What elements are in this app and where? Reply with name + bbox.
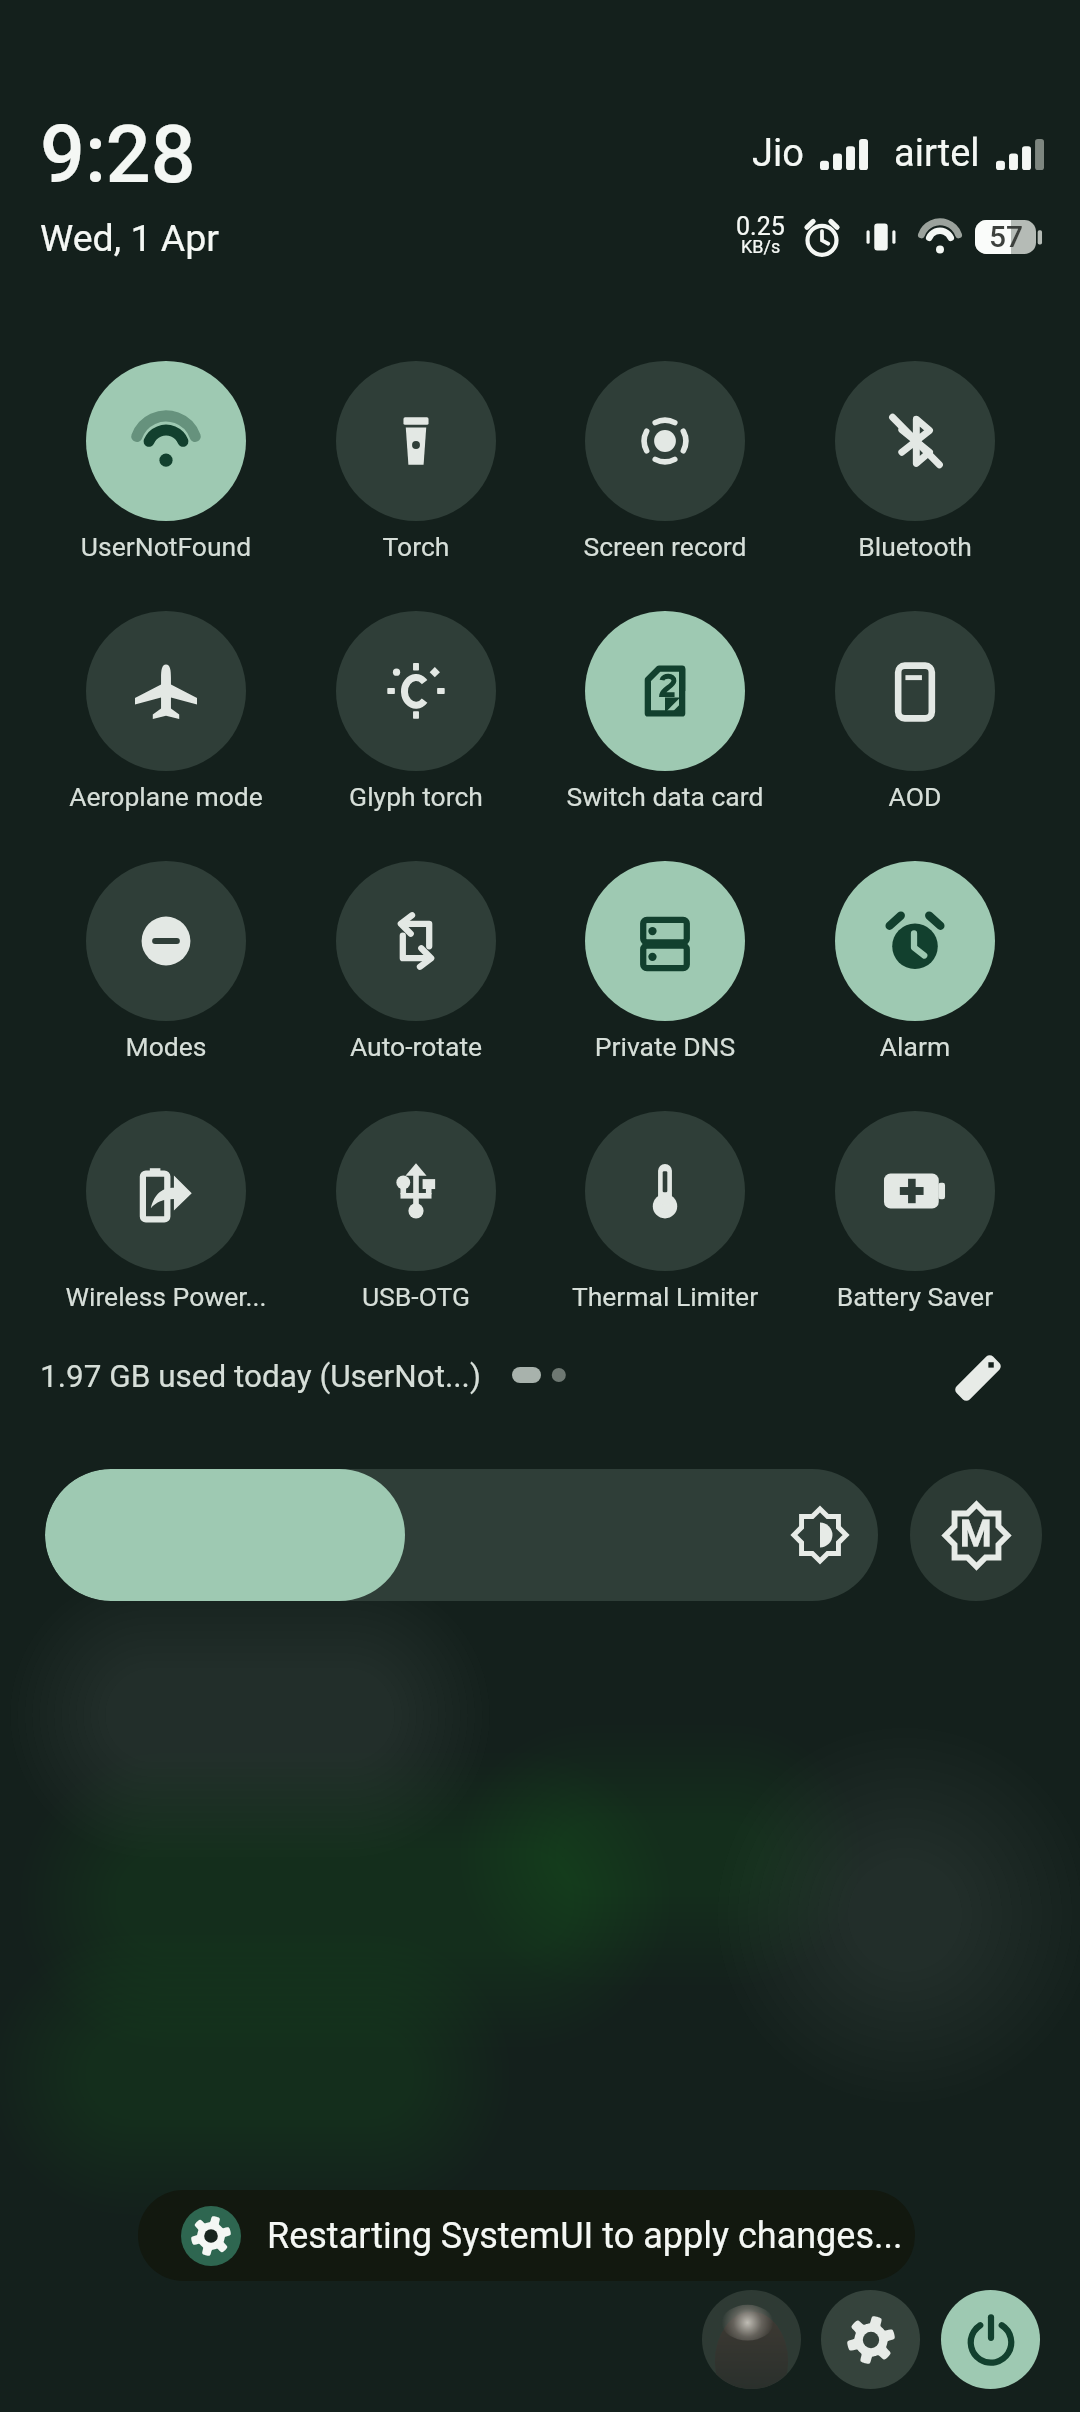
staticText: USB-OTG <box>304 1281 528 1312</box>
button[interactable]: User account <box>702 2290 801 2389</box>
button[interactable]: Restarting SystemUI to apply changes... <box>138 2190 915 2281</box>
staticText: Restarting SystemUI to apply changes... <box>267 2215 903 2257</box>
button[interactable]: Auto brightness <box>910 1469 1042 1601</box>
button[interactable]: Alarm <box>803 861 1027 1062</box>
button[interactable]: UserNotFound <box>54 361 278 562</box>
staticText: 1.97 GB used today (UserNot...) <box>40 1358 481 1395</box>
staticText: Bluetooth <box>803 531 1027 562</box>
staticText: airtel <box>894 131 980 176</box>
button[interactable]: Glyph torch <box>304 611 528 812</box>
staticText: Alarm <box>803 1031 1027 1062</box>
staticText: 9:28 <box>40 109 196 202</box>
staticText: Jio <box>752 131 804 176</box>
button[interactable]: Brightness <box>45 1469 878 1601</box>
staticText: AOD <box>803 781 1027 812</box>
button[interactable]: Thermal Limiter <box>553 1111 777 1312</box>
staticText: 0.25 <box>736 212 785 241</box>
button[interactable]: Power <box>941 2290 1040 2389</box>
button[interactable]: Private DNS <box>553 861 777 1062</box>
staticText: Wed, 1 Apr <box>40 216 220 260</box>
staticText: Torch <box>304 531 528 562</box>
button[interactable]: Edit tiles <box>938 1338 1018 1418</box>
staticText: Battery Saver <box>803 1281 1027 1312</box>
staticText: Screen record <box>553 531 777 562</box>
staticText: UserNotFound <box>54 531 278 562</box>
staticText: 57 <box>989 219 1024 253</box>
button[interactable]: Auto-rotate <box>304 861 528 1062</box>
button[interactable]: USB-OTG <box>304 1111 528 1312</box>
button[interactable]: Modes <box>54 861 278 1062</box>
staticText: KB/s <box>741 236 781 257</box>
button[interactable]: Aeroplane mode <box>54 611 278 812</box>
staticText: Modes <box>54 1031 278 1062</box>
button[interactable]: Switch data card <box>553 611 777 812</box>
staticText: Switch data card <box>553 781 777 812</box>
staticText: Thermal Limiter <box>553 1281 777 1312</box>
staticText: M <box>960 1513 992 1555</box>
button[interactable]: Wireless Power... <box>54 1111 278 1312</box>
staticText: Aeroplane mode <box>54 781 278 812</box>
staticText: Private DNS <box>553 1031 777 1062</box>
staticText: Auto-rotate <box>304 1031 528 1062</box>
staticText: Glyph torch <box>304 781 528 812</box>
button[interactable]: Bluetooth <box>803 361 1027 562</box>
button[interactable]: Settings <box>821 2290 920 2389</box>
button[interactable]: Torch <box>304 361 528 562</box>
button[interactable]: Screen record <box>553 361 777 562</box>
button[interactable]: AOD <box>803 611 1027 812</box>
button[interactable]: Battery Saver <box>803 1111 1027 1312</box>
staticText: Wireless Power... <box>54 1281 278 1312</box>
